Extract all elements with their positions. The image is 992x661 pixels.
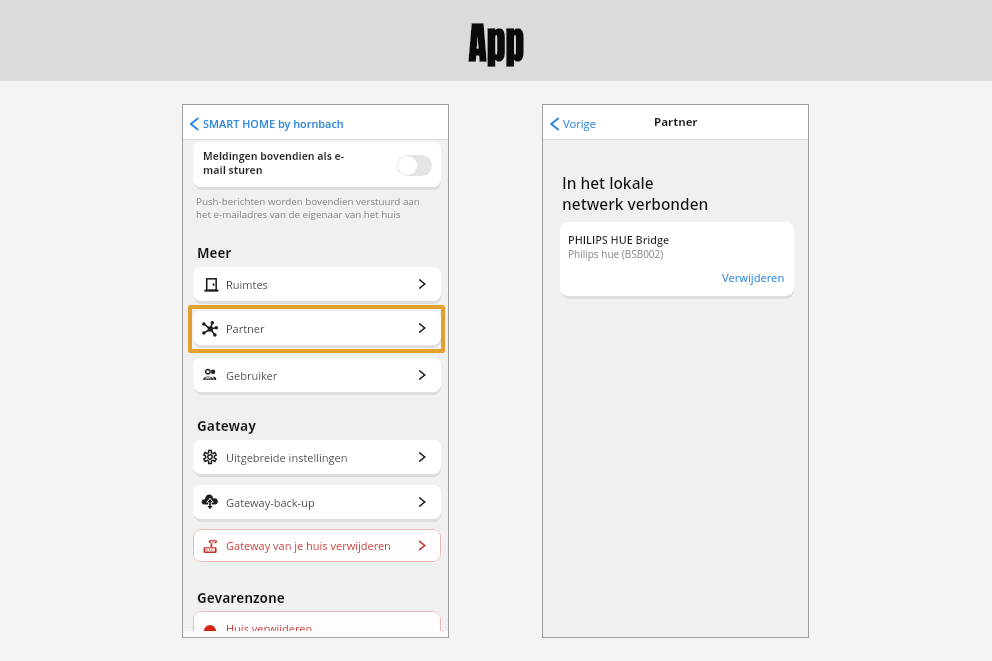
staticText: Gateway bbox=[197, 417, 256, 435]
staticText: Gateway-back-up bbox=[226, 495, 315, 510]
staticText: Ruimtes bbox=[226, 277, 268, 292]
button[interactable]: Verwijderen bbox=[722, 270, 785, 285]
staticText: Verwijderen bbox=[722, 270, 785, 285]
button[interactable]: Huis verwijderen bbox=[193, 611, 441, 637]
button[interactable]: Partner bbox=[193, 311, 441, 345]
staticText: Push-berichten worden bovendien verstuur… bbox=[196, 195, 430, 221]
staticText: Gebruiker bbox=[226, 368, 278, 383]
staticText: Partner bbox=[654, 114, 698, 130]
button[interactable]: Vorige bbox=[548, 113, 596, 135]
button[interactable]: Uitgebreide instellingen bbox=[193, 440, 441, 474]
button[interactable]: Gebruiker bbox=[193, 358, 441, 392]
button[interactable]: Toggle e-mail notification bbox=[397, 155, 432, 176]
staticText: Meldingen bovendien als e-mail sturen bbox=[203, 149, 353, 177]
staticText: App bbox=[468, 10, 524, 75]
staticText: Uitgebreide instellingen bbox=[226, 450, 348, 465]
staticText: PHILIPS HUE Bridge bbox=[568, 232, 670, 247]
staticText: Huis verwijderen bbox=[226, 621, 313, 636]
button[interactable]: SMART HOME by hornbach bbox=[188, 113, 344, 135]
staticText: Meer bbox=[197, 244, 232, 262]
staticText: SMART HOME by hornbach bbox=[203, 116, 344, 131]
button[interactable]: Gateway van je huis verwijderen bbox=[193, 529, 441, 562]
staticText: Gevarenzone bbox=[197, 589, 285, 607]
staticText: Vorige bbox=[563, 116, 596, 131]
staticText: Philips hue (BSB002) bbox=[568, 247, 664, 261]
button[interactable]: PHILIPS HUE Bridge bbox=[560, 222, 794, 296]
staticText: Gateway van je huis verwijderen bbox=[226, 538, 391, 553]
button[interactable]: Ruimtes bbox=[193, 267, 441, 301]
button[interactable]: Gateway-back-up bbox=[193, 485, 441, 519]
staticText: In het lokale netwerk verbonden bbox=[562, 173, 709, 214]
staticText: Partner bbox=[226, 321, 265, 336]
